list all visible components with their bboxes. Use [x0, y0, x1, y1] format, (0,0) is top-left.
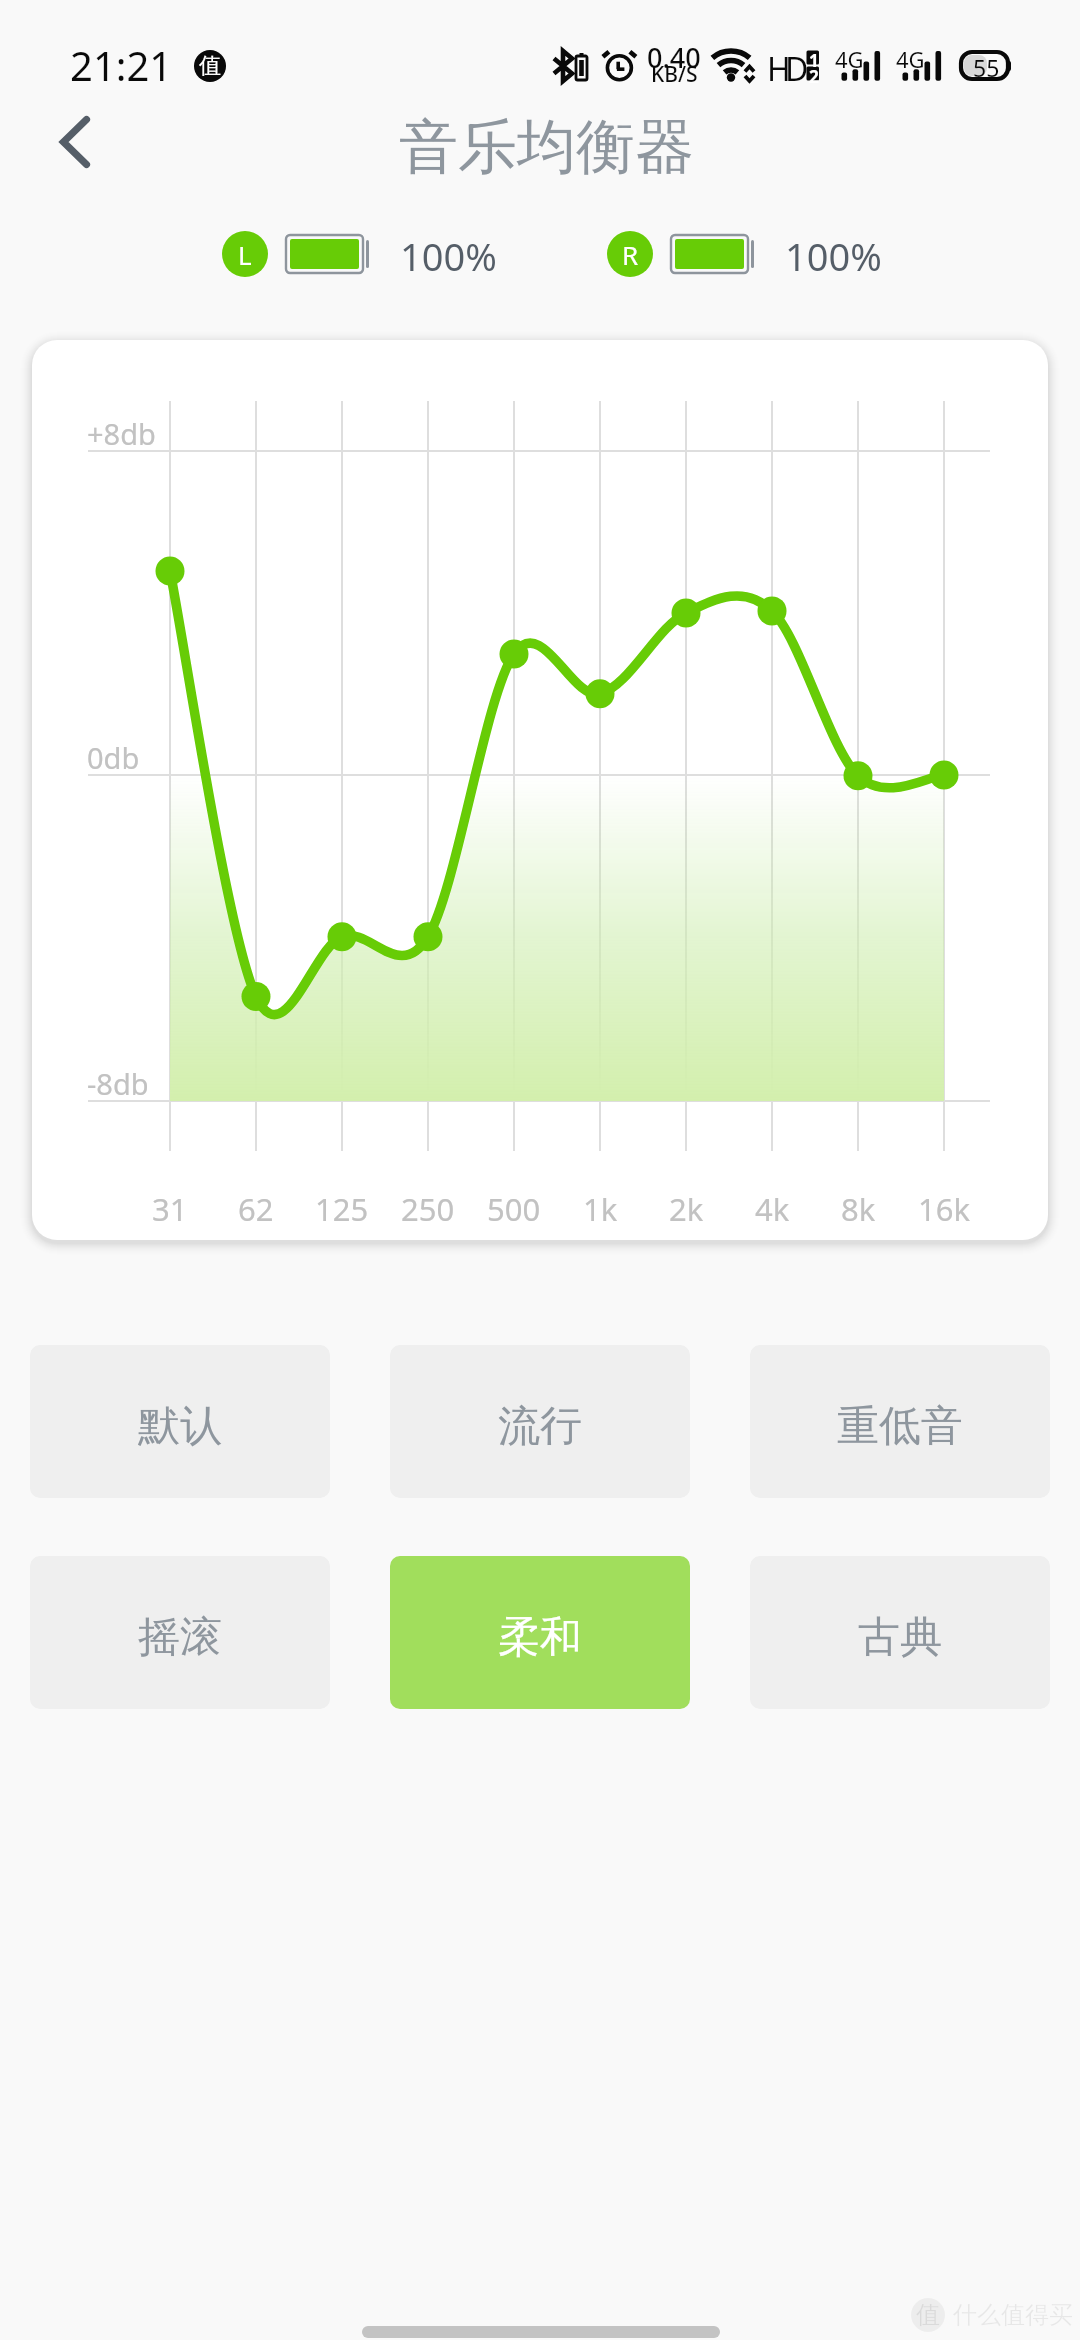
staticText: 0.40 [647, 39, 701, 76]
staticText: 125 [315, 1188, 369, 1230]
staticText: -8db [87, 1064, 149, 1103]
staticText: 16k [918, 1188, 971, 1230]
staticText: R [622, 237, 639, 272]
staticText: 音乐均衡器 [399, 110, 694, 184]
staticText: 500 [487, 1188, 541, 1230]
staticText: 4G [896, 44, 925, 74]
staticText: 4k [755, 1188, 790, 1230]
staticText: 值 [199, 52, 221, 80]
staticText: 摇滚 [138, 1611, 222, 1664]
staticText: L [238, 237, 252, 272]
staticText: 1k [583, 1188, 618, 1230]
button[interactable]: 流行 [390, 1345, 690, 1498]
button[interactable]: 重低音 [750, 1345, 1050, 1498]
staticText: 62 [238, 1188, 274, 1230]
staticText: KB/S [651, 60, 698, 89]
button[interactable]: 默认 [30, 1345, 330, 1498]
button[interactable]: Back [36, 102, 116, 182]
staticText: +8db [87, 414, 156, 453]
staticText: 重低音 [837, 1400, 963, 1453]
button[interactable]: 摇滚 [30, 1556, 330, 1709]
button[interactable]: 柔和 [390, 1556, 690, 1709]
staticText: 21:21 [70, 38, 173, 92]
staticText: 55 [973, 52, 1000, 83]
staticText: 100% [785, 230, 882, 278]
staticText: 100% [400, 230, 497, 278]
staticText: 默认 [138, 1400, 222, 1453]
staticText: 2 [809, 65, 819, 88]
staticText: 0db [87, 738, 140, 777]
button[interactable]: 古典 [750, 1556, 1050, 1709]
staticText: H [767, 47, 791, 91]
staticText: 31 [152, 1188, 188, 1230]
staticText: 流行 [498, 1400, 582, 1453]
staticText: 古典 [858, 1611, 942, 1664]
staticText: 值 [916, 2300, 940, 2330]
staticText: 250 [401, 1188, 455, 1230]
staticText: 2k [669, 1188, 704, 1230]
button[interactable]: Right earbud battery 100% [607, 230, 882, 278]
staticText: 什么值得买 [953, 2300, 1073, 2330]
button[interactable]: Left earbud battery 100% [222, 230, 497, 278]
staticText: 8k [841, 1188, 876, 1230]
staticText: 4G [835, 44, 864, 74]
staticText: 1 [809, 49, 819, 72]
staticText: D [785, 47, 809, 91]
staticText: 柔和 [498, 1611, 582, 1664]
